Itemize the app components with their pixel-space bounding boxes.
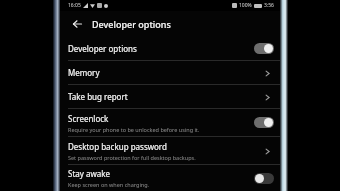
button[interactable]: Take bug report	[60, 85, 280, 108]
staticText: Require your phone to be unlocked before…	[68, 126, 200, 133]
other: Open Memory	[260, 66, 274, 80]
button[interactable]: Stay awake	[60, 165, 280, 191]
staticText: Take bug report	[68, 91, 128, 102]
staticText: 16:05	[68, 2, 81, 9]
button[interactable]: Desktop backup password	[60, 137, 280, 164]
staticText: Memory	[68, 67, 100, 78]
staticText: Developer options	[92, 18, 171, 30]
staticText: Developer options	[68, 43, 137, 54]
button[interactable]: Toggle Screenlock	[254, 117, 274, 128]
staticText: 3:56	[264, 2, 274, 9]
button[interactable]: Toggle Developer options	[254, 43, 274, 54]
staticText: Screenlock	[68, 113, 109, 124]
button[interactable]: Screenlock	[60, 109, 280, 136]
button[interactable]: Memory	[60, 61, 280, 84]
staticText: Stay awake	[68, 168, 110, 179]
other: Open Take bug report	[260, 90, 274, 104]
button[interactable]: Developer options	[60, 37, 280, 60]
staticText: Keep screen on when charging.	[68, 181, 150, 188]
staticText: 100%	[239, 2, 252, 9]
other: Open Desktop backup password	[260, 144, 274, 158]
staticText: Desktop backup password	[68, 141, 167, 152]
button[interactable]: Back	[68, 15, 86, 33]
button[interactable]: Toggle Stay awake	[254, 173, 274, 184]
staticText: Set password protection for full desktop…	[68, 154, 196, 161]
